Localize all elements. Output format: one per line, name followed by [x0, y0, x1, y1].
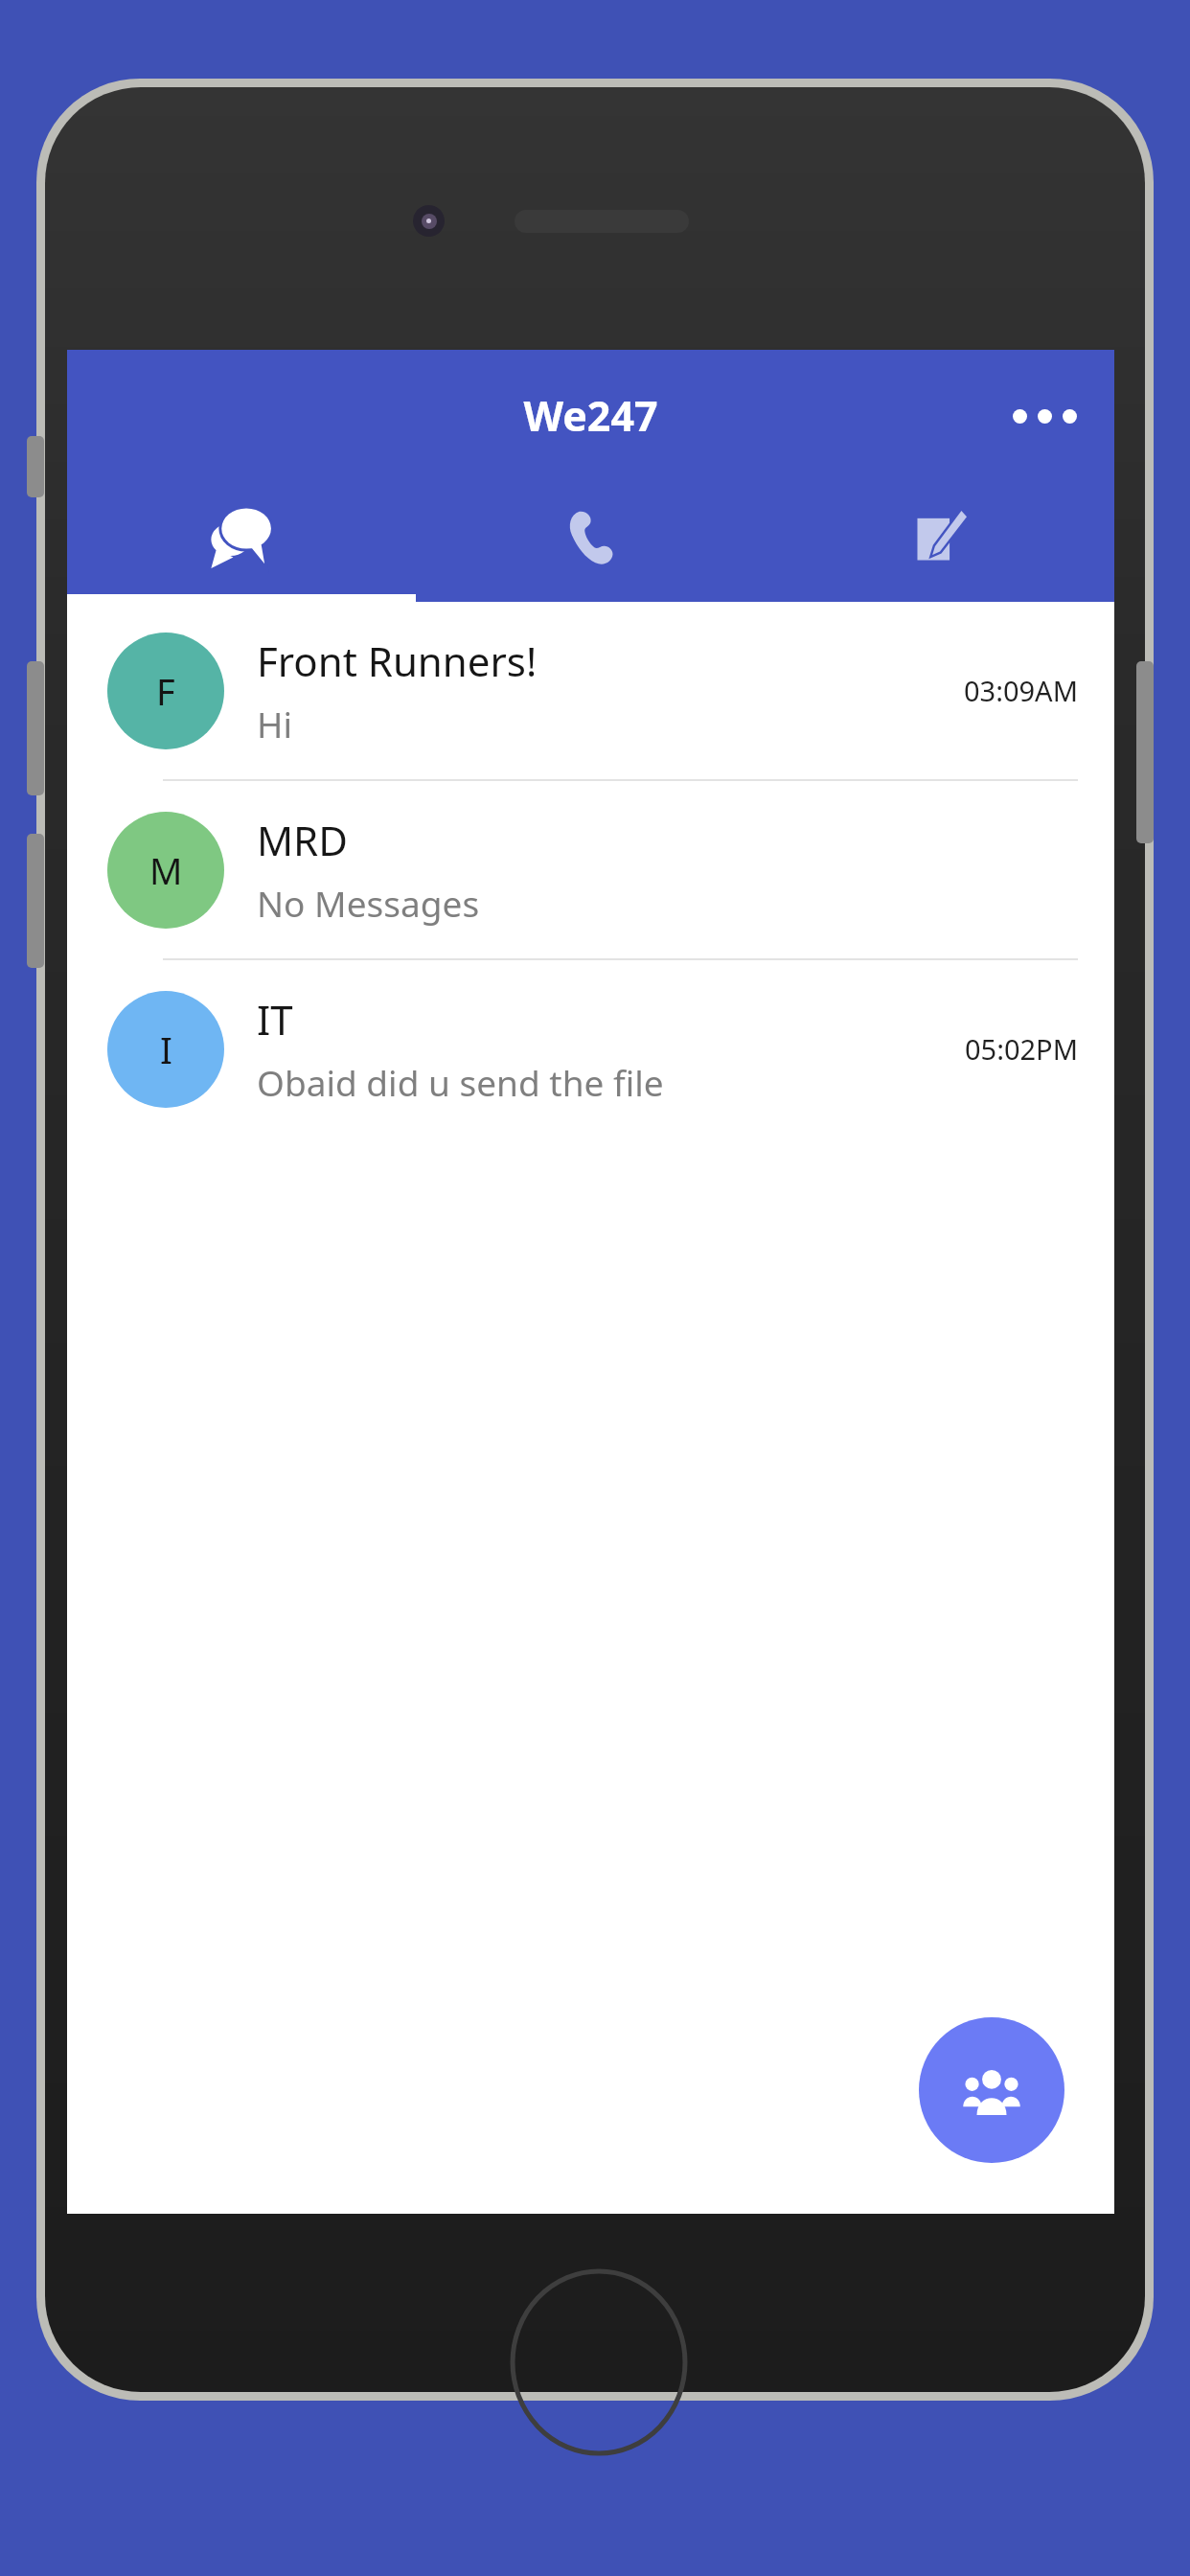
staticText: 05:02PM: [965, 1030, 1078, 1068]
staticText: F: [156, 666, 175, 716]
staticText: Obaid did u send the file: [257, 1058, 664, 1106]
button[interactable]: More options: [992, 363, 1097, 469]
staticText: I: [160, 1024, 172, 1074]
staticText: MRD: [257, 813, 348, 867]
staticText: M: [149, 845, 183, 895]
button[interactable]: I: [67, 960, 1114, 1138]
button[interactable]: Calls: [417, 481, 766, 594]
button[interactable]: Chats: [67, 481, 417, 594]
staticText: IT: [257, 992, 293, 1046]
staticText: Front Runners!: [257, 633, 538, 688]
button[interactable]: Compose: [766, 481, 1114, 594]
staticText: We247: [523, 387, 658, 444]
button[interactable]: F: [67, 602, 1114, 779]
button[interactable]: New group chat: [919, 2017, 1064, 2163]
staticText: Hi: [257, 700, 292, 747]
staticText: 03:09AM: [964, 672, 1078, 709]
staticText: No Messages: [257, 879, 480, 927]
button[interactable]: M: [67, 781, 1114, 958]
